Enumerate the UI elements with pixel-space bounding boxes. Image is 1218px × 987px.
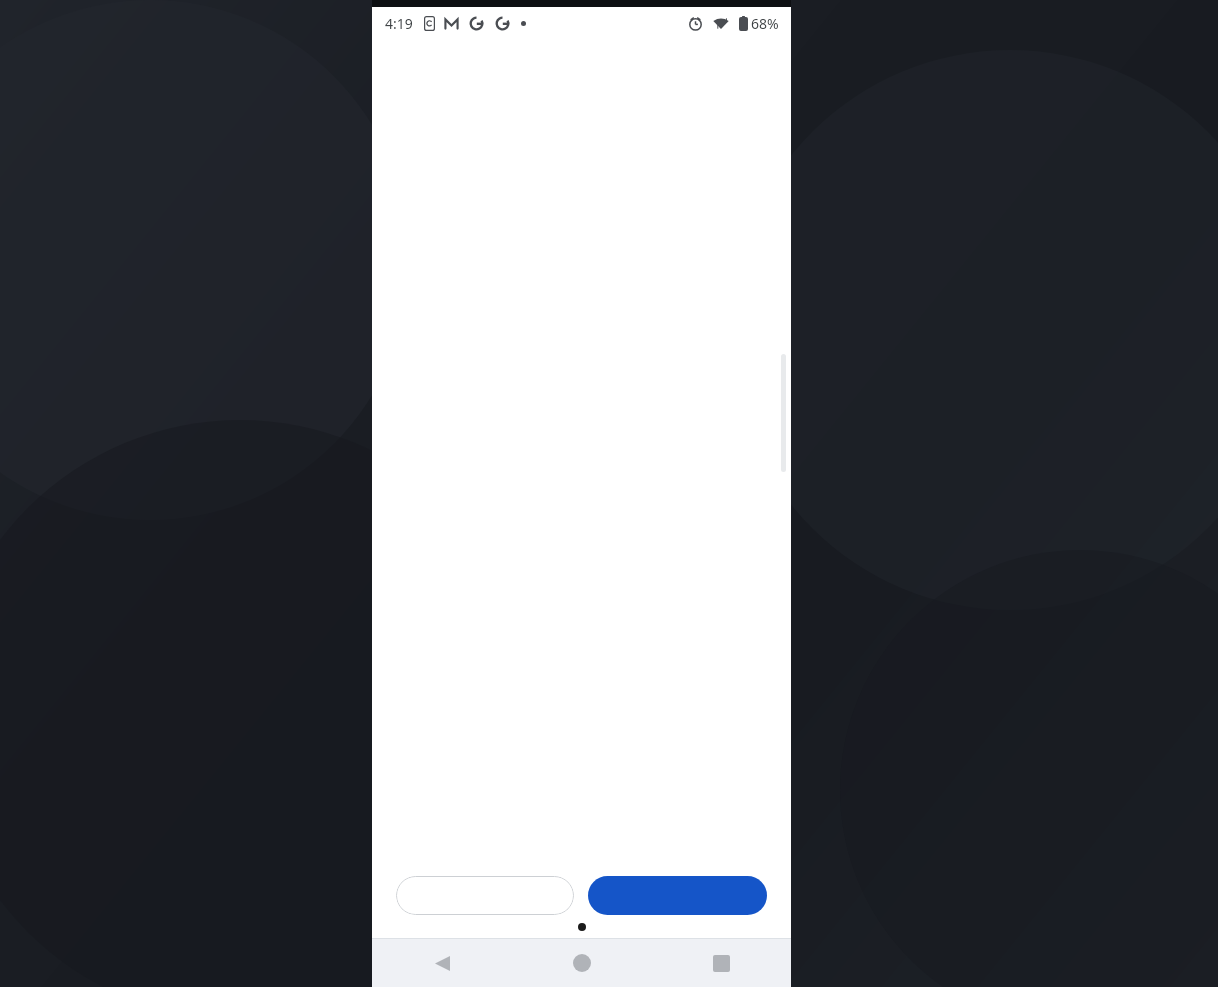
button[interactable]: Cancel xyxy=(396,876,574,915)
staticText: 68% xyxy=(751,14,779,33)
button[interactable]: Continue xyxy=(588,876,767,915)
staticText: 4:19 xyxy=(385,14,413,33)
button[interactable]: Back xyxy=(372,939,512,987)
button[interactable]: Home xyxy=(512,939,652,987)
button[interactable]: Recent apps xyxy=(652,939,791,987)
